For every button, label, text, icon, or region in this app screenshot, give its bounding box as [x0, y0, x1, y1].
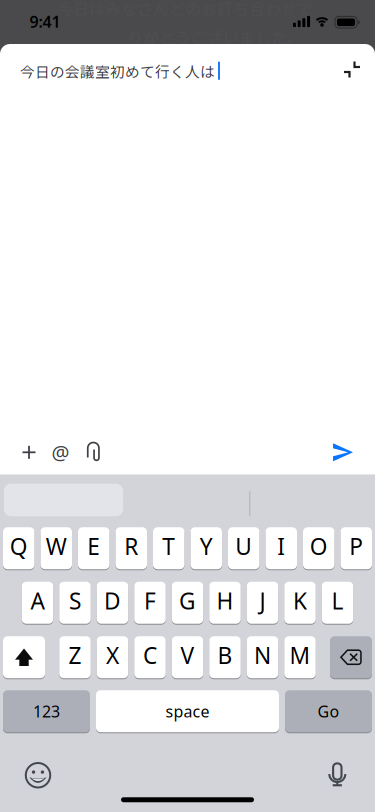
staticText: E — [87, 531, 100, 561]
staticText: Z — [68, 640, 81, 670]
staticText: C — [143, 640, 157, 670]
button[interactable]: T — [153, 527, 184, 570]
button[interactable]: O — [303, 527, 334, 570]
button[interactable]: I — [265, 527, 297, 570]
button[interactable]: D — [97, 582, 128, 625]
staticText: W — [46, 531, 67, 561]
button[interactable]: U — [228, 527, 259, 570]
staticText: A — [30, 586, 44, 616]
staticText: 123 — [33, 701, 60, 722]
staticText: 今日の会議室初めて行く人は — [20, 60, 215, 82]
staticText: J — [259, 586, 265, 616]
button[interactable]: space — [96, 690, 279, 733]
staticText: B — [217, 640, 232, 670]
button[interactable]: 123 — [3, 690, 90, 733]
staticText: M — [289, 640, 310, 670]
button[interactable]: N — [247, 636, 278, 679]
staticText: D — [104, 586, 121, 616]
staticText: O — [310, 531, 328, 561]
button[interactable] — [77, 430, 110, 474]
button[interactable]: Q — [3, 527, 34, 570]
button[interactable]: Z — [59, 636, 91, 679]
button[interactable]: L — [322, 582, 353, 625]
staticText: Q — [10, 531, 28, 561]
button[interactable] — [330, 636, 372, 679]
staticText: V — [180, 640, 194, 670]
staticText: Go — [317, 701, 339, 722]
staticText: space — [165, 701, 209, 722]
button[interactable] — [14, 430, 44, 474]
staticText: U — [235, 531, 252, 561]
button[interactable]: J — [247, 582, 278, 625]
button[interactable]: P — [340, 527, 372, 570]
button[interactable]: V — [172, 636, 203, 679]
button[interactable] — [25, 762, 51, 788]
staticText: N — [254, 640, 271, 670]
button[interactable]: @ — [44, 430, 77, 474]
button[interactable]: S — [59, 582, 91, 625]
staticText: H — [216, 586, 233, 616]
button[interactable]: E — [78, 527, 109, 570]
staticText: I — [277, 531, 285, 561]
button[interactable]: X — [97, 636, 128, 679]
staticText: K — [293, 586, 307, 616]
staticText: X — [106, 640, 119, 670]
button[interactable]: R — [115, 527, 147, 570]
staticText: L — [331, 586, 343, 616]
button[interactable]: A — [22, 582, 53, 625]
button[interactable] — [344, 44, 375, 77]
staticText: P — [349, 531, 363, 561]
staticText: @ — [51, 439, 69, 466]
button[interactable]: G — [172, 582, 203, 625]
button[interactable]: K — [284, 582, 316, 625]
button[interactable]: C — [134, 636, 166, 679]
button[interactable]: Go — [285, 690, 372, 733]
staticText: G — [179, 586, 196, 616]
button[interactable] — [3, 636, 45, 679]
button[interactable]: F — [134, 582, 166, 625]
button[interactable] — [321, 430, 365, 474]
button[interactable]: B — [209, 636, 241, 679]
button[interactable]: Y — [190, 527, 222, 570]
staticText: T — [162, 531, 175, 561]
staticText: りがとうございました。 — [127, 25, 303, 49]
staticText: R — [124, 531, 138, 561]
staticText: F — [144, 586, 156, 616]
staticText: S — [69, 586, 81, 616]
button[interactable]: M — [284, 636, 316, 679]
staticText: Y — [200, 531, 213, 561]
button[interactable]: W — [40, 527, 72, 570]
button[interactable] — [329, 762, 346, 786]
staticText: 今日はみなさんとのお打ち合わせで — [57, 0, 313, 20]
staticText: 9:41 — [29, 11, 60, 32]
button[interactable]: H — [209, 582, 241, 625]
